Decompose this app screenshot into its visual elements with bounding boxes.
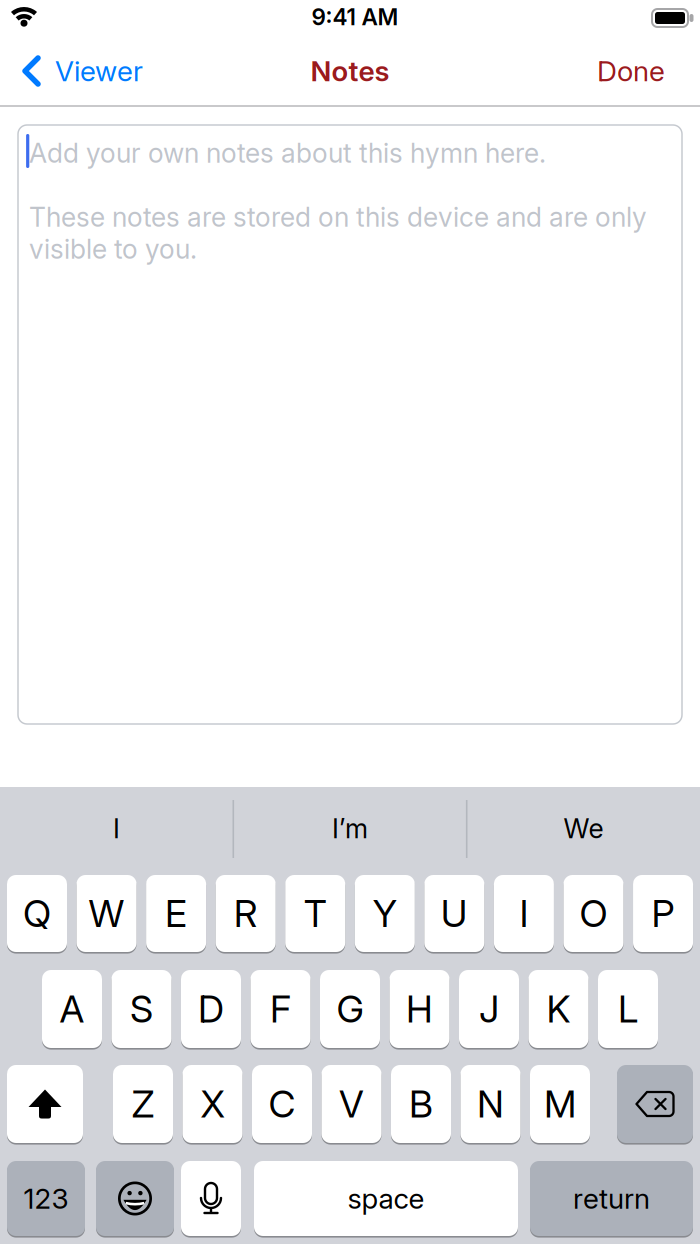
staticText: P [651, 891, 674, 936]
button[interactable]: R [216, 875, 276, 952]
staticText: G [336, 986, 363, 1032]
staticText: These notes are stored on this device an… [29, 201, 647, 233]
button[interactable]: J [459, 970, 519, 1048]
staticText: Viewer [55, 54, 143, 88]
staticText: W [89, 891, 125, 936]
button[interactable]: Z [113, 1065, 173, 1143]
button[interactable]: A [42, 970, 102, 1048]
button[interactable]: Delete [617, 1065, 693, 1143]
staticText: T [304, 891, 327, 936]
staticText: H [406, 986, 433, 1032]
staticText: B [409, 1081, 433, 1127]
staticText: F [270, 986, 291, 1032]
button[interactable]: We [468, 790, 698, 866]
staticText: L [618, 986, 638, 1032]
button[interactable]: I [2, 790, 232, 866]
staticText: 9:41 AM [311, 3, 398, 31]
button[interactable]: Done [545, 46, 665, 96]
staticText: Y [373, 891, 397, 936]
button[interactable]: I’m [235, 790, 465, 866]
button[interactable]: Q [7, 875, 67, 952]
staticText: R [234, 891, 258, 936]
staticText: N [477, 1081, 504, 1127]
button[interactable]: C [252, 1065, 312, 1143]
staticText: return [573, 1182, 650, 1215]
button[interactable]: Notes text editor [18, 125, 682, 724]
button[interactable]: H [389, 970, 449, 1048]
staticText: J [479, 986, 499, 1032]
staticText: S [130, 986, 153, 1032]
button[interactable]: I [494, 875, 554, 952]
staticText: Add your own notes about this hymn here. [29, 137, 546, 169]
button[interactable]: Emoji [96, 1161, 174, 1236]
staticText: Done [597, 54, 665, 88]
staticText: visible to you. [29, 233, 197, 265]
staticText: U [441, 891, 468, 936]
button[interactable]: space [254, 1161, 518, 1236]
staticText: K [546, 986, 570, 1032]
staticText: I [519, 891, 528, 936]
button[interactable]: O [563, 875, 623, 952]
staticText: Z [131, 1081, 154, 1127]
staticText: A [59, 986, 84, 1032]
staticText: I [113, 812, 120, 845]
button[interactable]: X [182, 1065, 242, 1143]
button[interactable]: F [250, 970, 310, 1048]
button[interactable]: M [530, 1065, 590, 1143]
button[interactable]: S [111, 970, 171, 1048]
button[interactable]: D [181, 970, 241, 1048]
button[interactable]: Dictate [181, 1161, 241, 1236]
staticText: I’m [332, 812, 368, 845]
button[interactable]: W [77, 875, 137, 952]
button[interactable]: G [320, 970, 380, 1048]
button[interactable]: T [285, 875, 345, 952]
staticText: Q [23, 891, 51, 936]
button[interactable]: E [146, 875, 206, 952]
staticText: space [347, 1182, 424, 1215]
staticText: C [268, 1081, 295, 1127]
staticText: V [339, 1081, 364, 1127]
button[interactable]: V [321, 1065, 381, 1143]
button[interactable]: Viewer [22, 46, 172, 96]
staticText: D [198, 986, 224, 1032]
button[interactable]: B [391, 1065, 451, 1143]
button[interactable]: L [598, 970, 658, 1048]
staticText: 123 [23, 1182, 68, 1215]
staticText: Notes [310, 54, 389, 88]
button[interactable]: P [633, 875, 693, 952]
button[interactable]: Y [355, 875, 415, 952]
staticText: X [200, 1081, 224, 1127]
staticText: E [165, 891, 187, 936]
button[interactable]: U [424, 875, 484, 952]
staticText: We [563, 812, 603, 845]
staticText: M [544, 1081, 576, 1127]
button[interactable]: N [460, 1065, 520, 1143]
button[interactable]: 123 [7, 1161, 85, 1236]
button[interactable]: K [528, 970, 588, 1048]
button[interactable]: Shift [7, 1065, 83, 1143]
button[interactable]: return [530, 1161, 693, 1236]
staticText: O [579, 891, 607, 936]
